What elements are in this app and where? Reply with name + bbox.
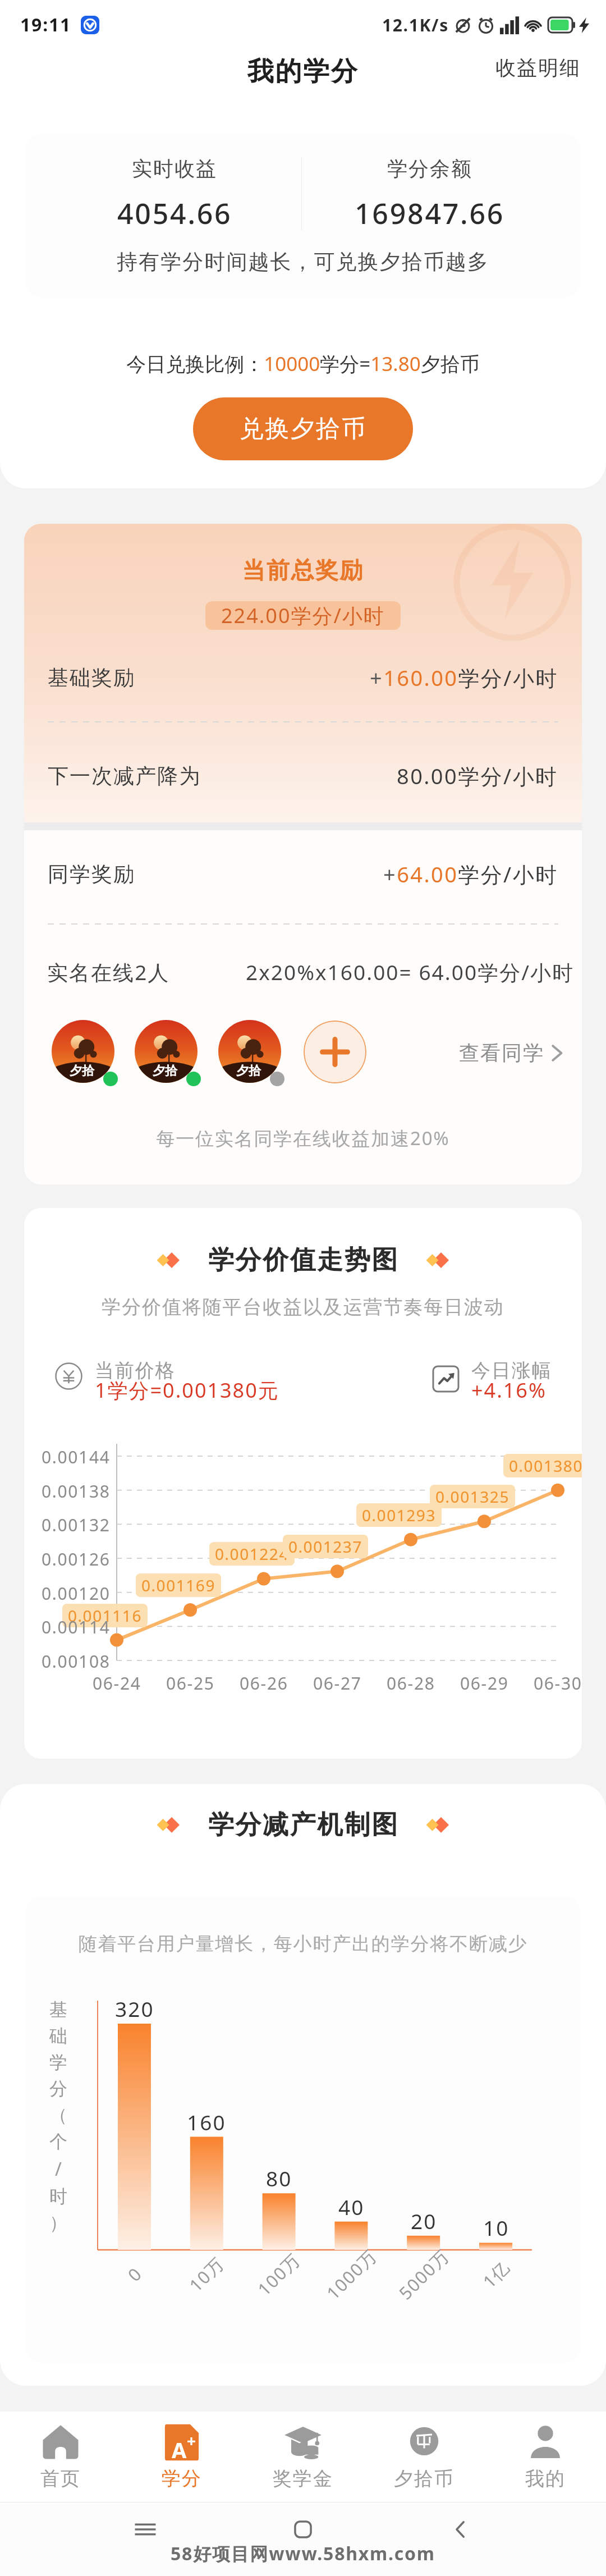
staticText: 20 xyxy=(411,2207,437,2235)
staticText: 0.001325 xyxy=(435,1486,509,1507)
staticText: 实名在线2人 xyxy=(47,958,170,986)
staticText: ） xyxy=(49,2212,68,2234)
staticText: 4054.66 xyxy=(117,194,232,232)
staticText: 160 xyxy=(187,2108,226,2136)
staticText: 础 xyxy=(49,2025,68,2047)
staticText: 06-30 xyxy=(534,1672,582,1695)
button[interactable]: 首页 xyxy=(0,2412,121,2502)
staticText: 学分价值将随平台收益以及运营节奏每日波动 xyxy=(24,1295,582,1319)
staticText: 1000万 xyxy=(321,2244,382,2304)
staticText: 夕拾 xyxy=(70,1063,94,1079)
staticText: 06-27 xyxy=(313,1672,362,1695)
button[interactable]: 兑换夕拾币 xyxy=(193,397,413,460)
staticText: 10 xyxy=(483,2213,509,2241)
staticText: 1亿 xyxy=(477,2255,515,2293)
button[interactable]: 收益明细 xyxy=(473,43,606,93)
staticText: 0.00114 xyxy=(42,1616,111,1639)
staticText: 分 xyxy=(49,2078,68,2100)
staticText: 今日涨幅 xyxy=(471,1358,552,1383)
staticText: 0.001224 xyxy=(215,1543,289,1564)
staticText: 5000万 xyxy=(394,2244,454,2304)
staticText: 夕拾 xyxy=(153,1063,177,1079)
staticText: +64.00学分/小时 xyxy=(383,859,558,889)
staticText: 06-24 xyxy=(93,1672,141,1695)
button[interactable]: 查看同学 xyxy=(442,1031,575,1074)
staticText: 学分 xyxy=(162,2467,202,2491)
staticText: 0.001293 xyxy=(362,1504,436,1526)
staticText: 奖学金 xyxy=(273,2467,333,2491)
staticText: 持有学分时间越长，可兑换夕拾币越多 xyxy=(25,249,581,275)
staticText: 我的学分 xyxy=(247,55,359,88)
staticText: 夕拾 xyxy=(236,1063,261,1079)
staticText: 基础奖励 xyxy=(48,665,136,691)
staticText: 个 xyxy=(49,2130,68,2153)
staticText: 同学奖励 xyxy=(48,861,136,887)
staticText: 169847.66 xyxy=(355,194,505,232)
staticText: （ xyxy=(49,2104,68,2126)
other: Recents xyxy=(133,2517,158,2542)
staticText: 学 xyxy=(49,2051,68,2074)
staticText: 基 xyxy=(49,1998,68,2021)
staticText: 0.001169 xyxy=(141,1575,215,1596)
staticText: 80 xyxy=(266,2164,292,2192)
button[interactable]: A xyxy=(121,2412,242,2502)
staticText: 06-26 xyxy=(240,1672,288,1695)
staticText: 夕拾币 xyxy=(394,2467,454,2491)
staticText: 80.00学分/小时 xyxy=(397,761,558,790)
staticText: 10万 xyxy=(184,2251,229,2297)
staticText: 06-25 xyxy=(166,1672,215,1695)
staticText: 0.00138 xyxy=(42,1480,111,1503)
staticText: 19:11 xyxy=(20,12,72,37)
staticText: 我的 xyxy=(525,2467,566,2491)
staticText: / xyxy=(55,2157,63,2181)
staticText: 0.00126 xyxy=(42,1548,111,1571)
staticText: 学分减产机制图 xyxy=(208,1809,399,1841)
staticText: 首页 xyxy=(40,2467,81,2491)
staticText: 实时收益 xyxy=(132,156,217,181)
staticText: 下一次减产降为 xyxy=(48,763,201,789)
staticText: 当前总奖励 xyxy=(24,556,582,585)
staticText: 时 xyxy=(49,2185,68,2208)
other: Home xyxy=(291,2517,315,2542)
staticText: 0.00120 xyxy=(42,1582,111,1605)
staticText: 每一位实名同学在线收益加速20% xyxy=(24,1125,582,1151)
button[interactable]: 添加同学 xyxy=(304,1021,366,1083)
staticText: + xyxy=(187,2430,196,2451)
staticText: 0.00108 xyxy=(42,1650,111,1673)
staticText: 0.001116 xyxy=(68,1605,142,1626)
staticText: 随着平台用户量增长，每小时产出的学分将不断减少 xyxy=(25,1932,581,1956)
staticText: 0.001380 xyxy=(509,1455,582,1476)
button[interactable]: 我的 xyxy=(485,2412,606,2502)
other: Back xyxy=(448,2517,473,2542)
staticText: 查看同学 xyxy=(459,1040,544,1065)
staticText: 0.001237 xyxy=(288,1536,362,1557)
staticText: 12.1K/s xyxy=(382,13,449,36)
staticText: 0 xyxy=(122,2262,147,2286)
staticText: +160.00学分/小时 xyxy=(370,663,558,692)
staticText: 收益明细 xyxy=(495,55,581,80)
staticText: 1学分=0.001380元 xyxy=(95,1376,279,1404)
staticText: 0.00144 xyxy=(42,1445,111,1468)
staticText: +4.16% xyxy=(471,1376,547,1404)
staticText: 兑换夕拾币 xyxy=(240,414,367,444)
staticText: 0.00132 xyxy=(42,1513,111,1536)
staticText: 06-29 xyxy=(460,1672,509,1695)
staticText: 学分余额 xyxy=(387,156,472,181)
staticText: 2x20%x160.00= 64.00学分/小时 xyxy=(246,958,575,986)
staticText: 40 xyxy=(338,2193,365,2221)
staticText: 100万 xyxy=(252,2247,305,2301)
button[interactable]: 夕拾币 xyxy=(364,2412,485,2502)
staticText: A xyxy=(172,2435,187,2464)
staticText: 当前价格 xyxy=(95,1358,176,1383)
staticText: 学分价值走势图 xyxy=(208,1244,399,1276)
staticText: 今日兑换比例：10000学分=13.80夕拾币 xyxy=(0,350,606,377)
staticText: 58好项目网www.58hxm.com xyxy=(171,2541,435,2566)
staticText: 224.00学分/小时 xyxy=(221,602,385,629)
staticText: 06-28 xyxy=(387,1672,435,1695)
button[interactable]: 奖学金 xyxy=(242,2412,364,2502)
staticText: 320 xyxy=(115,1994,154,2023)
